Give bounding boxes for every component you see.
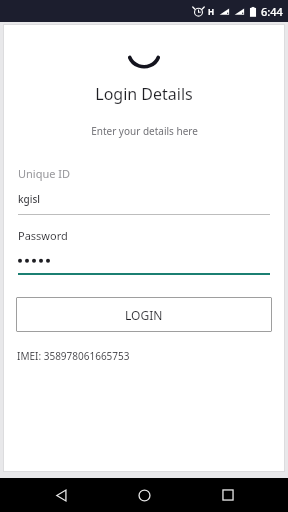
staticText: 6:44 [261, 4, 283, 19]
staticText: Password [18, 228, 68, 243]
button[interactable]: Recent apps [205, 478, 251, 512]
staticText: LOGIN [125, 307, 163, 323]
staticText: Login Details [95, 83, 193, 105]
staticText: IMEI: 358978061665753 [17, 349, 130, 363]
button[interactable]: LOGIN [16, 297, 272, 332]
button[interactable]: Home [121, 478, 167, 512]
button[interactable]: Password [18, 228, 270, 275]
button[interactable]: Back [38, 478, 84, 512]
staticText: kgisl [18, 192, 41, 206]
button[interactable]: Unique ID [18, 166, 270, 215]
staticText: H [208, 6, 215, 17]
staticText: Enter your details here [91, 124, 198, 138]
staticText: Unique ID [18, 166, 71, 181]
